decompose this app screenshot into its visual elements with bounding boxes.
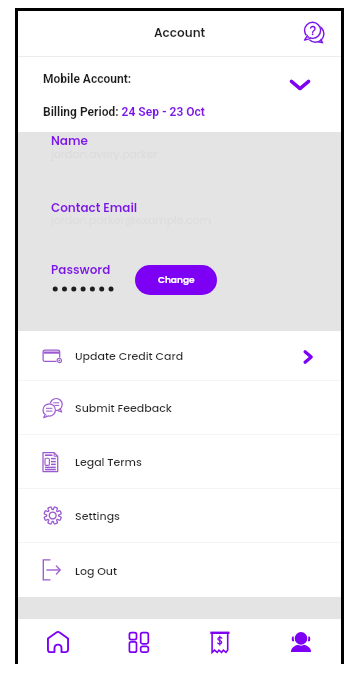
staticText: Submit Feedback bbox=[75, 400, 172, 415]
staticText: Change bbox=[158, 274, 195, 287]
staticText: Mobile Account: bbox=[43, 72, 132, 86]
button[interactable]: Mobile Account: bbox=[18, 57, 341, 132]
button[interactable]: Log Out bbox=[18, 543, 341, 597]
staticText: Password bbox=[51, 261, 111, 278]
button[interactable]: Help bbox=[300, 18, 328, 46]
button[interactable]: Settings bbox=[18, 489, 341, 542]
button[interactable]: Change bbox=[135, 265, 217, 295]
staticText: Log Out bbox=[75, 563, 118, 578]
staticText: Legal Terms bbox=[75, 454, 142, 469]
staticText: Billing Period: 24 Sep - 23 Oct bbox=[43, 105, 205, 119]
button[interactable]: Home bbox=[18, 619, 98, 664]
button[interactable]: Legal Terms bbox=[18, 435, 341, 488]
button[interactable]: Dashboard bbox=[98, 619, 179, 664]
button[interactable]: Account bbox=[260, 619, 341, 664]
staticText: Account bbox=[154, 24, 206, 41]
button[interactable]: Update Credit Card bbox=[18, 331, 341, 380]
staticText: Contact Email bbox=[51, 199, 138, 216]
button[interactable]: Billing bbox=[179, 619, 260, 664]
staticText: Settings bbox=[75, 508, 120, 523]
button[interactable]: Expand bbox=[280, 65, 320, 105]
staticText: Update Credit Card bbox=[75, 348, 184, 363]
button[interactable]: Submit Feedback bbox=[18, 381, 341, 434]
staticText: Name bbox=[51, 132, 88, 149]
